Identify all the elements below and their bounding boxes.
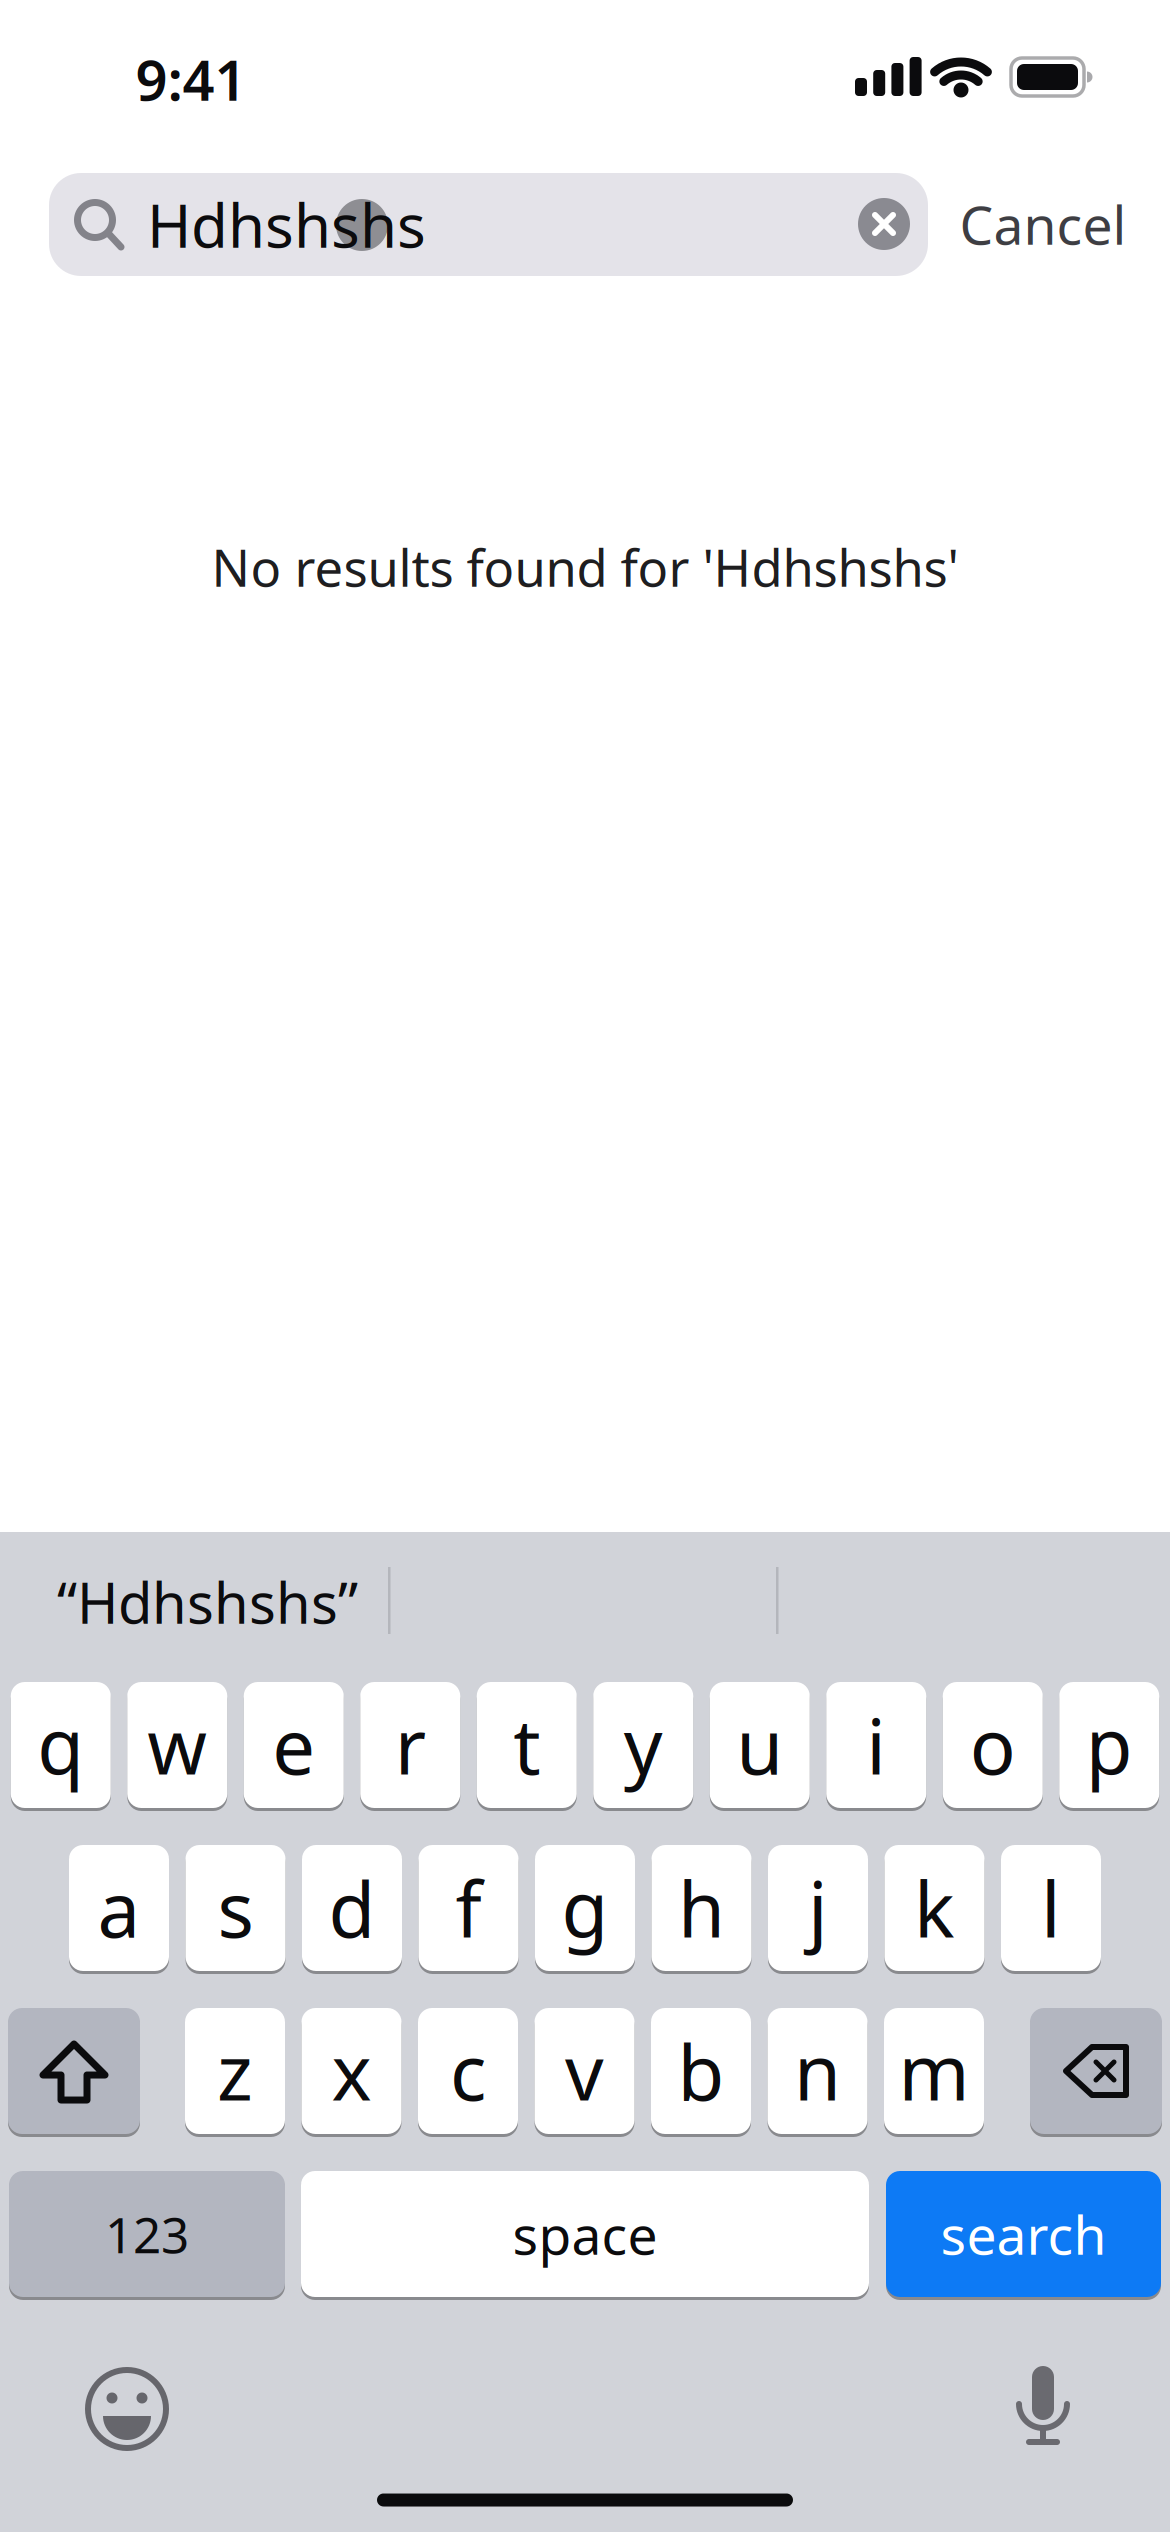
- button[interactable]: t: [477, 1682, 577, 1808]
- button[interactable]: x: [301, 2008, 401, 2134]
- staticText: s: [217, 1857, 253, 1958]
- button[interactable]: q: [11, 1682, 111, 1808]
- button[interactable]: “Hdhshshs”: [0, 1527, 388, 1677]
- button[interactable]: d: [302, 1845, 402, 1971]
- button[interactable]: n: [767, 2008, 867, 2134]
- button[interactable]: p: [1059, 1682, 1159, 1808]
- staticText: z: [217, 2020, 253, 2121]
- staticText: Cancel: [959, 189, 1126, 259]
- staticText: l: [1041, 1857, 1061, 1958]
- button[interactable]: g: [535, 1845, 635, 1971]
- staticText: No results found for 'Hdhshshs': [211, 533, 958, 601]
- staticText: k: [914, 1857, 955, 1958]
- button[interactable]: l: [1001, 1845, 1101, 1971]
- staticText: x: [331, 2020, 371, 2121]
- staticText: d: [328, 1857, 375, 1958]
- staticText: y: [624, 1694, 663, 1795]
- staticText: a: [97, 1857, 140, 1958]
- staticText: t: [513, 1694, 540, 1795]
- staticText: q: [37, 1694, 84, 1795]
- button[interactable]: a: [69, 1845, 169, 1971]
- button[interactable]: s: [185, 1845, 285, 1971]
- staticText: v: [565, 2020, 604, 2121]
- button[interactable]: Shift: [8, 2008, 140, 2134]
- staticText: w: [147, 1694, 207, 1795]
- button[interactable]: j: [768, 1845, 868, 1971]
- button[interactable]: y: [593, 1682, 693, 1808]
- button[interactable]: m: [884, 2008, 984, 2134]
- staticText: e: [272, 1694, 315, 1795]
- staticText: 9:41: [135, 42, 246, 116]
- button[interactable]: search: [886, 2171, 1161, 2297]
- button[interactable]: w: [127, 1682, 227, 1808]
- button[interactable]: r: [360, 1682, 460, 1808]
- button[interactable]: Delete: [1030, 2008, 1162, 2134]
- staticText: search: [940, 2199, 1106, 2269]
- staticText: i: [866, 1694, 886, 1795]
- staticText: c: [450, 2020, 486, 2121]
- button[interactable]: Hdhshshs: [49, 173, 928, 276]
- button[interactable]: b: [651, 2008, 751, 2134]
- button[interactable]: z: [185, 2008, 285, 2134]
- button[interactable]: u: [710, 1682, 810, 1808]
- staticText: u: [736, 1694, 783, 1795]
- button[interactable]: space: [301, 2171, 869, 2297]
- button[interactable]: h: [651, 1845, 751, 1971]
- button[interactable]: i: [826, 1682, 926, 1808]
- button[interactable]: Emoji: [79, 2361, 175, 2457]
- staticText: n: [794, 2020, 841, 2121]
- staticText: j: [808, 1857, 828, 1958]
- staticText: Hdhshshs: [147, 185, 426, 264]
- button[interactable]: Clear text: [858, 198, 910, 250]
- staticText: g: [561, 1857, 608, 1958]
- staticText: p: [1086, 1694, 1133, 1795]
- button[interactable]: 123: [9, 2171, 285, 2297]
- button[interactable]: c: [418, 2008, 518, 2134]
- staticText: o: [970, 1694, 1016, 1795]
- button[interactable]: k: [884, 1845, 984, 1971]
- staticText: f: [455, 1857, 481, 1958]
- button[interactable]: o: [943, 1682, 1043, 1808]
- staticText: “Hdhshshs”: [57, 1565, 358, 1639]
- button[interactable]: Cancel: [959, 189, 1126, 259]
- staticText: r: [395, 1694, 426, 1795]
- button[interactable]: e: [244, 1682, 344, 1808]
- staticText: space: [512, 2199, 657, 2269]
- staticText: 123: [105, 2201, 189, 2267]
- staticText: m: [898, 2020, 969, 2121]
- staticText: h: [678, 1857, 725, 1958]
- button[interactable]: f: [418, 1845, 518, 1971]
- staticText: b: [677, 2020, 724, 2121]
- button[interactable]: Dictation: [998, 2350, 1088, 2460]
- button[interactable]: v: [534, 2008, 634, 2134]
